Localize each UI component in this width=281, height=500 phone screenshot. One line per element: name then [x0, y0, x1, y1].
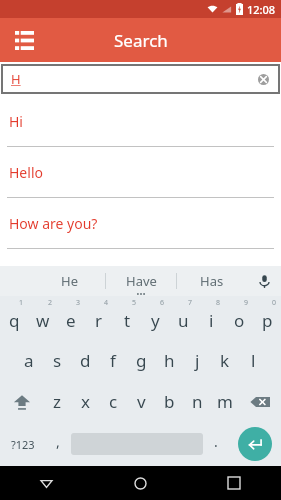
- staticText: Search: [114, 29, 168, 52]
- staticText: ?123: [11, 437, 35, 452]
- button[interactable]: Enter: [229, 422, 281, 466]
- staticText: w: [36, 309, 50, 332]
- staticText: r: [95, 309, 103, 332]
- button[interactable]: s: [43, 340, 71, 381]
- staticText: h: [164, 349, 175, 372]
- button[interactable]: ,: [45, 422, 71, 466]
- button[interactable]: 8: [197, 296, 225, 340]
- button[interactable]: Backspace: [239, 381, 281, 422]
- button[interactable]: a: [14, 340, 43, 381]
- button[interactable]: 3: [57, 296, 85, 340]
- button[interactable]: c: [99, 381, 127, 422]
- staticText: 5: [132, 298, 137, 308]
- button[interactable]: g: [127, 340, 155, 381]
- button[interactable]: Shift: [0, 381, 43, 422]
- button[interactable]: How are you?: [0, 198, 281, 249]
- staticText: o: [234, 309, 245, 332]
- staticText: f: [110, 349, 116, 372]
- staticText: H: [11, 70, 21, 88]
- staticText: x: [81, 390, 90, 413]
- button[interactable]: Recents: [187, 466, 281, 500]
- staticText: 9: [244, 298, 249, 308]
- staticText: a: [24, 349, 34, 372]
- staticText: i: [209, 309, 214, 332]
- button[interactable]: Have: [106, 266, 176, 296]
- button[interactable]: n: [183, 381, 211, 422]
- button[interactable]: k: [211, 340, 239, 381]
- staticText: y: [151, 309, 160, 332]
- staticText: Have: [126, 272, 157, 290]
- staticText: 1: [19, 298, 24, 308]
- staticText: d: [80, 349, 91, 372]
- button[interactable]: Home: [93, 466, 187, 500]
- button[interactable]: H: [2, 65, 279, 93]
- staticText: m: [217, 390, 233, 413]
- staticText: He: [61, 272, 78, 290]
- button[interactable]: Hi: [0, 96, 281, 147]
- button[interactable]: 2: [29, 296, 57, 340]
- button[interactable]: Menu: [8, 24, 40, 56]
- staticText: 4: [104, 298, 109, 308]
- button[interactable]: d: [71, 340, 99, 381]
- button[interactable]: f: [99, 340, 127, 381]
- button[interactable]: ?123: [0, 422, 45, 466]
- button[interactable]: .: [203, 422, 229, 466]
- staticText: 0: [272, 298, 277, 308]
- staticText: 3: [76, 298, 81, 308]
- staticText: g: [136, 349, 147, 372]
- staticText: e: [66, 309, 76, 332]
- button[interactable]: l: [239, 340, 267, 381]
- button[interactable]: Has: [177, 266, 247, 296]
- staticText: c: [109, 390, 118, 413]
- button[interactable]: 9: [225, 296, 253, 340]
- staticText: k: [220, 349, 230, 372]
- staticText: 7: [188, 298, 193, 308]
- button[interactable]: j: [183, 340, 211, 381]
- button[interactable]: 0: [253, 296, 281, 340]
- button[interactable]: m: [211, 381, 239, 422]
- button[interactable]: Clear: [254, 70, 272, 88]
- button[interactable]: Voice input: [247, 266, 281, 296]
- button[interactable]: b: [155, 381, 183, 422]
- staticText: l: [251, 349, 256, 372]
- staticText: 6: [160, 298, 165, 308]
- button[interactable]: Hello: [0, 147, 281, 198]
- button[interactable]: h: [155, 340, 183, 381]
- button[interactable]: 6: [141, 296, 169, 340]
- button[interactable]: Back: [0, 466, 93, 500]
- button[interactable]: z: [43, 381, 71, 422]
- staticText: u: [178, 309, 189, 332]
- staticText: q: [9, 309, 20, 332]
- staticText: p: [262, 309, 273, 332]
- button[interactable]: 7: [169, 296, 197, 340]
- staticText: z: [53, 390, 61, 413]
- staticText: Has: [200, 272, 224, 290]
- staticText: j: [195, 349, 200, 372]
- button[interactable]: 5: [113, 296, 141, 340]
- button[interactable]: v: [127, 381, 155, 422]
- staticText: ,: [56, 432, 60, 451]
- button[interactable]: 4: [85, 296, 113, 340]
- staticText: t: [124, 309, 131, 332]
- button[interactable]: x: [71, 381, 99, 422]
- staticText: b: [164, 390, 175, 413]
- button[interactable]: 1: [0, 296, 29, 340]
- staticText: v: [137, 390, 146, 413]
- staticText: Hello: [9, 163, 43, 182]
- staticText: .: [214, 432, 218, 451]
- staticText: 2: [48, 298, 53, 308]
- button[interactable]: He: [34, 266, 105, 296]
- staticText: How are you?: [9, 214, 98, 233]
- staticText: n: [192, 390, 203, 413]
- staticText: s: [53, 349, 62, 372]
- staticText: 12:08: [247, 2, 276, 17]
- staticText: Hi: [9, 112, 23, 131]
- staticText: 8: [216, 298, 221, 308]
